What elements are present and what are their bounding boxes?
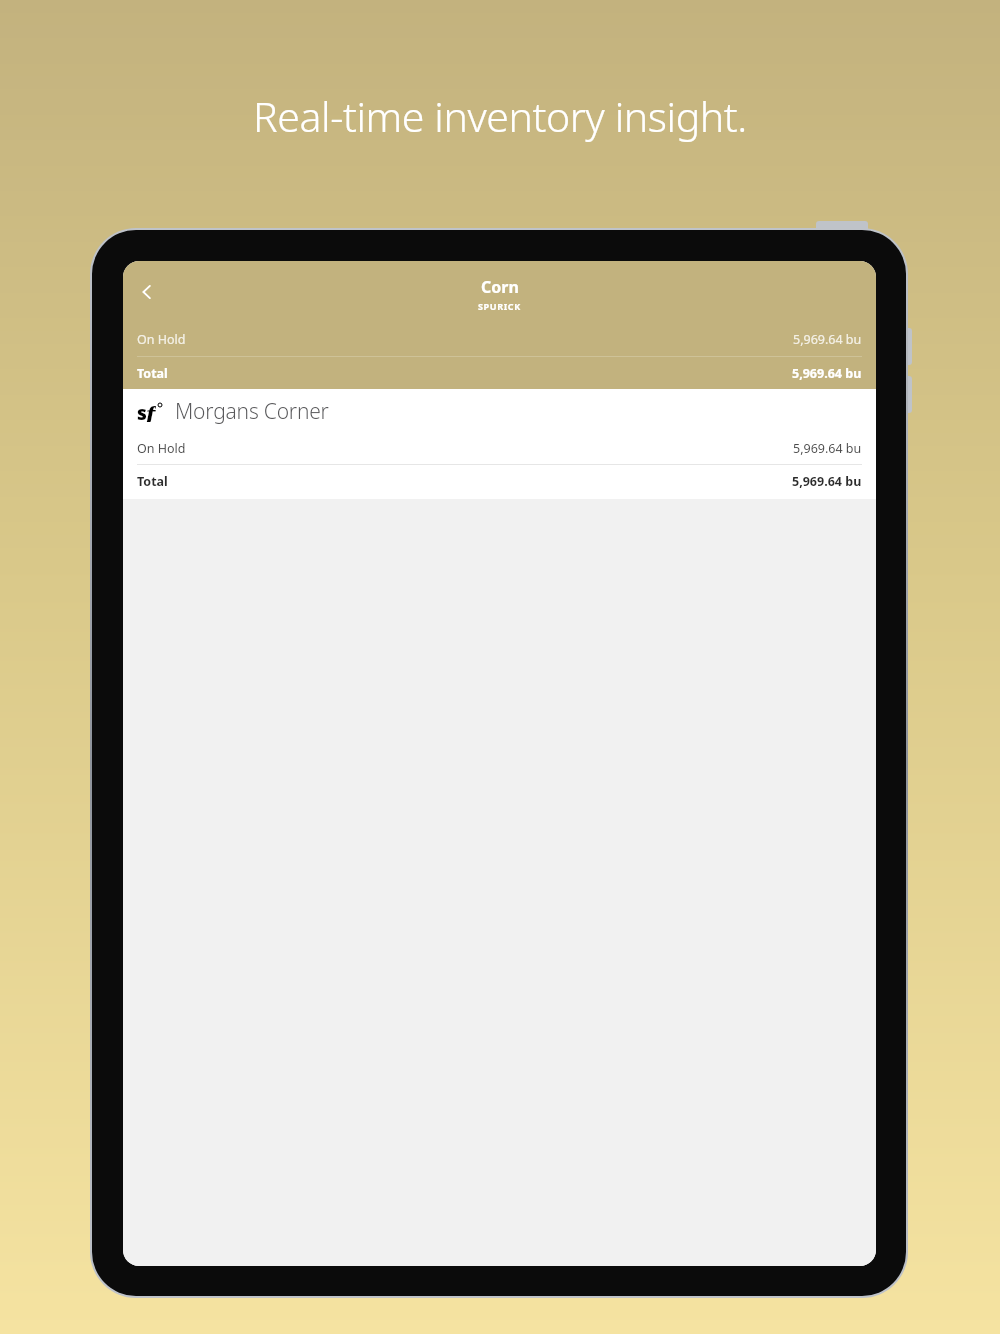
staticText: 5,969.64 bu	[792, 473, 862, 490]
staticText: s	[137, 400, 147, 422]
staticText: Total	[137, 473, 168, 490]
staticText: Total	[137, 365, 168, 382]
staticText: On Hold	[137, 440, 186, 457]
staticText: SPURICK	[478, 300, 521, 312]
button[interactable]: s	[123, 389, 876, 499]
staticText: On Hold	[137, 331, 186, 348]
staticText: f	[146, 400, 156, 422]
staticText: Real-time inventory insight.	[253, 88, 747, 144]
staticText: 5,969.64 bu	[792, 365, 862, 382]
staticText: Corn	[481, 276, 519, 298]
staticText: Morgans Corner	[175, 397, 329, 426]
button[interactable]: Back	[125, 270, 169, 314]
staticText: 5,969.64 bu	[793, 440, 862, 457]
staticText: 5,969.64 bu	[793, 331, 862, 348]
